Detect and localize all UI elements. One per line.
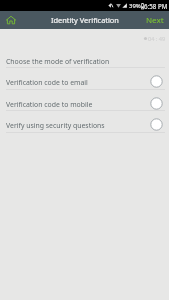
staticText: Verify using security questions	[6, 121, 105, 130]
button[interactable]: Next	[141, 15, 169, 26]
staticText: Identity Verification	[51, 15, 119, 25]
staticText: 04 : 49	[148, 35, 166, 43]
button[interactable]: Verification code to email	[0, 67, 169, 89]
staticText: Verification code to mobile	[6, 100, 93, 109]
staticText: 39%	[129, 2, 141, 10]
staticText: 6:58 PM	[144, 2, 168, 10]
button[interactable]: Verify using security questions	[0, 110, 169, 132]
staticText: Next	[146, 15, 164, 26]
button[interactable]: Home	[2, 11, 20, 29]
button[interactable]: Verification code to mobile	[0, 89, 169, 111]
button[interactable]: Choose the mode of verification	[0, 46, 169, 68]
staticText: Choose the mode of verification	[6, 57, 110, 66]
staticText: Verification code to email	[6, 78, 88, 87]
